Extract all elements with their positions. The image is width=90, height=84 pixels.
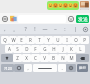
staticText: F xyxy=(34,46,37,52)
staticText: : xyxy=(64,26,66,33)
button[interactable]: Keyboard settings xyxy=(80,24,90,34)
button[interactable]: : xyxy=(60,24,70,34)
button[interactable]: ?123 xyxy=(1,64,14,72)
button[interactable]: Avatar xyxy=(80,1,89,10)
button[interactable]: X xyxy=(22,54,31,62)
button[interactable]: A xyxy=(5,45,13,53)
staticText: 发送 xyxy=(78,16,88,22)
staticText: C xyxy=(34,55,37,61)
button[interactable]: V xyxy=(40,54,49,62)
staticText: B xyxy=(52,55,55,61)
staticText: Q xyxy=(3,37,7,43)
staticText: U xyxy=(56,37,60,43)
button[interactable]: 发送 xyxy=(76,15,89,23)
staticText: V xyxy=(43,55,46,61)
staticText: | xyxy=(74,26,77,33)
button[interactable]: , xyxy=(0,24,10,34)
staticText: N xyxy=(61,55,65,61)
button[interactable]: | xyxy=(70,24,80,34)
staticText: ? xyxy=(24,26,27,33)
button[interactable]: J xyxy=(58,45,67,53)
staticText: T xyxy=(38,37,41,43)
staticText: ~ xyxy=(54,26,57,33)
staticText: I xyxy=(66,37,68,43)
staticText: . xyxy=(61,65,63,71)
staticText: L xyxy=(79,46,82,52)
button[interactable]: ? xyxy=(20,24,30,34)
button[interactable]: — xyxy=(40,24,50,34)
staticText: S xyxy=(16,46,19,52)
button[interactable]: E xyxy=(17,36,26,44)
staticText: K xyxy=(70,46,73,52)
staticText: — xyxy=(42,26,48,33)
staticText: O xyxy=(74,37,78,43)
staticText: A xyxy=(8,46,11,52)
button[interactable]: Q xyxy=(1,36,9,44)
staticText: G xyxy=(43,46,47,52)
button[interactable]: Emoji keyboard xyxy=(14,64,24,72)
staticText: Z xyxy=(16,55,19,61)
button[interactable]: T xyxy=(35,36,44,44)
staticText: W xyxy=(11,37,16,43)
button[interactable]: Z xyxy=(13,54,22,62)
staticText: H xyxy=(52,46,56,52)
staticText: , xyxy=(27,65,29,71)
button[interactable]: S xyxy=(13,45,22,53)
staticText: 换行 xyxy=(79,66,86,70)
button[interactable] xyxy=(47,1,79,10)
button[interactable]: G xyxy=(40,45,49,53)
button[interactable]: P xyxy=(80,36,89,44)
button[interactable]: W xyxy=(9,36,17,44)
button[interactable]: ! xyxy=(30,24,40,34)
staticText: M xyxy=(69,55,74,61)
button[interactable]: D xyxy=(22,45,31,53)
button[interactable]: Voice xyxy=(66,64,76,72)
staticText: X xyxy=(25,55,28,61)
staticText: E xyxy=(20,37,23,43)
button[interactable]: N xyxy=(58,54,67,62)
button[interactable]: K xyxy=(67,45,76,53)
button[interactable]: Space xyxy=(33,64,57,72)
button[interactable]: B xyxy=(49,54,58,62)
button[interactable]: ~ xyxy=(50,24,60,34)
button[interactable]: F xyxy=(31,45,40,53)
button[interactable]: , xyxy=(24,64,32,72)
staticText: Y xyxy=(47,37,50,43)
staticText: 。 xyxy=(13,26,18,32)
button[interactable]: H xyxy=(49,45,58,53)
button[interactable]: Sticker xyxy=(9,14,18,23)
staticText: P xyxy=(83,37,86,43)
button[interactable]: Enter xyxy=(77,64,88,72)
button[interactable]: Backspace xyxy=(76,54,89,62)
button[interactable]: C xyxy=(31,54,40,62)
staticText: ! xyxy=(34,26,36,33)
button[interactable]: M xyxy=(67,54,76,62)
button[interactable]: I xyxy=(62,36,71,44)
button[interactable]: R xyxy=(26,36,35,44)
button[interactable]: Shift xyxy=(1,54,13,62)
staticText: J xyxy=(62,46,64,52)
staticText: ?123 xyxy=(4,66,12,71)
button[interactable]: . xyxy=(58,64,66,72)
staticText: R xyxy=(29,37,32,43)
button[interactable]: Voice input xyxy=(1,15,9,23)
staticText: , xyxy=(4,26,6,33)
button[interactable]: Y xyxy=(44,36,53,44)
button[interactable]: Emoji xyxy=(67,15,75,23)
button[interactable]: U xyxy=(53,36,62,44)
button[interactable]: 。 xyxy=(10,24,20,34)
button[interactable]: O xyxy=(71,36,80,44)
button[interactable]: L xyxy=(76,45,85,53)
staticText: D xyxy=(25,46,29,52)
